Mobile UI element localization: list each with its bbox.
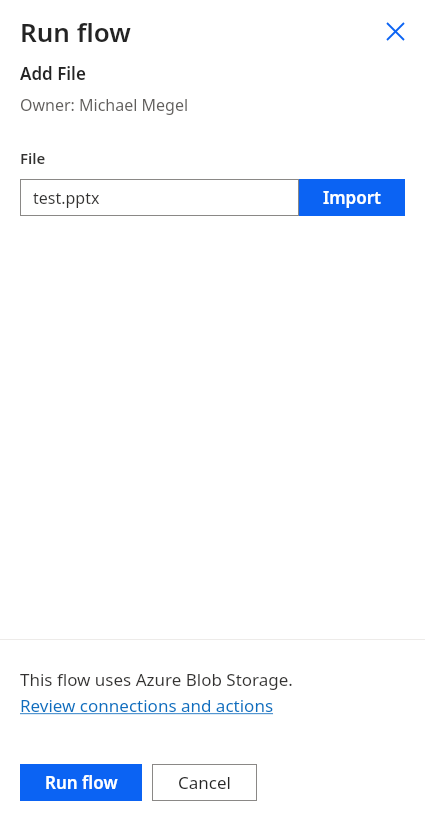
staticText: Import (323, 186, 382, 209)
staticText: Add File (20, 62, 86, 85)
staticText: Cancel (178, 771, 231, 794)
staticText: Run flow (45, 771, 118, 794)
staticText: test.pptx (33, 187, 100, 209)
button[interactable]: Close (373, 9, 417, 53)
staticText: This flow uses Azure Blob Storage. (20, 668, 293, 691)
staticText: Owner: Michael Megel (20, 94, 189, 116)
staticText: Run flow (20, 14, 131, 49)
staticText: Review connections and actions (20, 694, 274, 717)
button[interactable]: Run flow (20, 764, 142, 801)
button[interactable]: Cancel (152, 764, 257, 801)
staticText: File (20, 148, 46, 168)
button[interactable]: test.pptx (20, 179, 299, 216)
button[interactable]: Import (299, 179, 405, 216)
button[interactable]: Review connections and actions (20, 694, 274, 717)
